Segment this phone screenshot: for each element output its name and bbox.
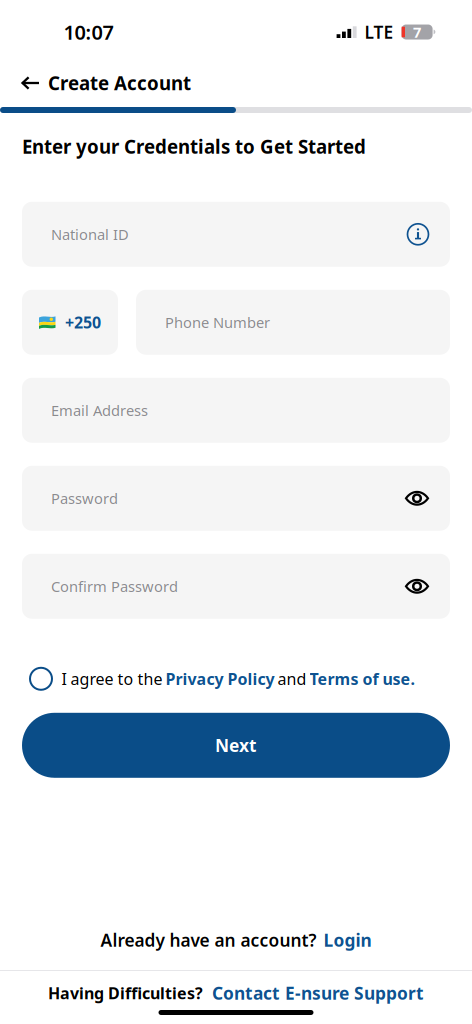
button[interactable]: Terms of use. [309,668,414,689]
button[interactable]: +250 [22,290,118,355]
staticText: 10:07 [63,19,113,45]
staticText: +250 [65,312,101,333]
button[interactable]: Confirm Password [22,554,450,619]
staticText: Phone Number [165,313,270,332]
staticText: I agree to the [61,668,162,689]
staticText: Terms of use. [309,668,414,689]
button[interactable]: Next [22,713,450,778]
button[interactable]: Email Address [22,378,450,443]
button[interactable]: National ID [22,202,450,267]
staticText: Next [215,734,257,757]
button[interactable]: Phone Number [136,290,450,355]
button[interactable]: Password [22,466,450,531]
staticText: Password [51,489,118,508]
staticText: Login [323,928,371,951]
staticText: Contact E-nsure Support [212,981,424,1004]
staticText: Email Address [51,401,148,420]
button[interactable]: Privacy Policy [165,668,274,689]
staticText: Already have an account? [100,928,316,951]
staticText: Enter your Credentials to Get Started [22,134,366,159]
staticText: 7 [413,22,421,42]
staticText: Having Difficulties? [48,982,203,1004]
staticText: Create Account [48,71,191,95]
staticText: LTE [365,20,394,43]
staticText: Confirm Password [51,577,178,596]
button[interactable]: I agree to the Privacy Policy and Terms … [30,668,52,690]
staticText: Privacy Policy [165,668,274,689]
button[interactable]: Already have an account? [0,925,472,955]
staticText: National ID [51,225,129,244]
button[interactable]: Back [21,76,40,90]
button[interactable]: Having Difficulties? [0,980,472,1006]
staticText: and [277,668,306,689]
